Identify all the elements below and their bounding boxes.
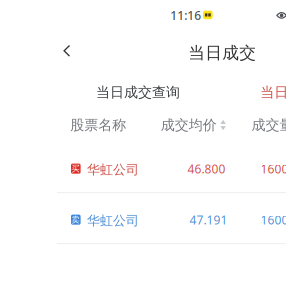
staticText: 华虹公司: [87, 162, 139, 178]
staticText: 11:16: [170, 7, 201, 23]
staticText: 股票名称: [70, 116, 126, 134]
staticText: 当日成交: [188, 42, 256, 63]
staticText: 当日成交查询: [96, 84, 180, 101]
staticText: 华虹公司: [87, 213, 139, 229]
button[interactable]: 卖: [0, 0, 286, 284]
button[interactable]: 成交量: [252, 116, 286, 134]
staticText: 卖: [71, 214, 80, 225]
staticText: 47.191: [189, 212, 227, 228]
staticText: 买: [71, 163, 80, 174]
button[interactable]: 当日委托查询: [254, 79, 286, 106]
staticText: 16000: [261, 161, 286, 177]
staticText: 16000: [261, 212, 286, 228]
staticText: 46.800: [188, 161, 226, 177]
staticText: 成交量: [252, 116, 286, 134]
button[interactable]: 成交均价: [161, 116, 226, 134]
button[interactable]: 买: [0, 0, 286, 284]
button[interactable]: 当日成交查询: [90, 79, 186, 106]
staticText: 成交均价: [161, 116, 217, 134]
button[interactable]: Toggle balance visibility: [273, 9, 286, 22]
button[interactable]: Back: [54, 38, 79, 64]
staticText: 当日委托查询: [260, 84, 286, 101]
